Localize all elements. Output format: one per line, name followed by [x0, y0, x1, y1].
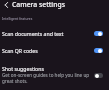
staticText: Get on-screen guides to help you line up…: [2, 72, 90, 85]
button[interactable]: Toggle: [91, 70, 105, 81]
staticText: Intelligent features: [2, 16, 33, 20]
staticText: Scan documents and text: [2, 30, 64, 37]
button[interactable]: Shot suggestions: [0, 60, 109, 86]
staticText: Scan QR codes: [2, 47, 38, 54]
staticText: Camera settings: [12, 0, 65, 9]
button[interactable]: Back: [0, 0, 11, 9]
button[interactable]: Toggle: [91, 28, 105, 39]
button[interactable]: Scan documents and text: [0, 26, 109, 41]
button[interactable]: Toggle: [91, 45, 105, 56]
staticText: Shot suggestions: [2, 65, 44, 72]
button[interactable]: Scan QR codes: [0, 41, 109, 60]
